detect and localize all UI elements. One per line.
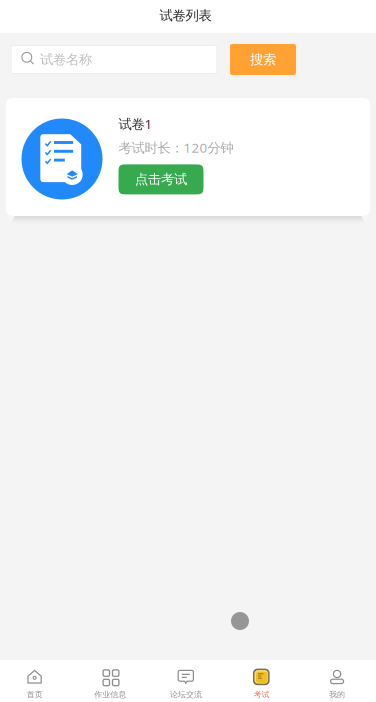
staticText: 试卷名称 [40, 51, 92, 68]
button[interactable]: 作业信息 [72, 659, 148, 702]
staticText: 论坛交流 [170, 690, 202, 699]
staticText: 试卷列表 [159, 7, 211, 24]
staticText: 试卷1 [118, 115, 152, 133]
button[interactable]: 搜索 [230, 44, 296, 75]
button[interactable]: 试卷1 [6, 98, 370, 216]
button[interactable]: 首页 [0, 659, 72, 702]
button[interactable]: 考试 [224, 659, 299, 702]
staticText: 点击考试 [135, 171, 187, 188]
button[interactable]: 我的 [299, 659, 375, 702]
staticText: 考试时长：120分钟 [118, 139, 233, 156]
staticText: 搜索 [250, 51, 276, 68]
staticText: 考试 [253, 690, 269, 699]
staticText: 作业信息 [94, 690, 126, 699]
staticText: 我的 [329, 690, 345, 699]
button[interactable]: 论坛交流 [148, 659, 224, 702]
staticText: 首页 [27, 690, 43, 699]
